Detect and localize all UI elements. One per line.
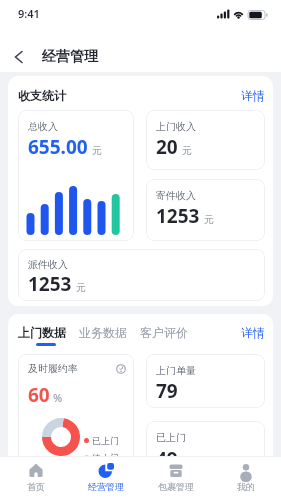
staticText: 已上门	[156, 431, 186, 444]
staticText: 9:41	[18, 6, 40, 21]
button[interactable]: 及时履约率	[18, 354, 134, 484]
staticText: 1253	[156, 203, 200, 229]
staticText: 49	[156, 446, 178, 472]
staticText: 1253	[28, 271, 72, 297]
staticText: 我的	[237, 481, 255, 492]
staticText: 元	[182, 144, 192, 157]
staticText: 上门数据	[18, 325, 66, 340]
button[interactable]	[14, 51, 24, 63]
button[interactable]: 上门数据	[18, 325, 66, 346]
staticText: 派件收入	[28, 258, 68, 271]
staticText: 及时履约率	[28, 362, 78, 375]
button[interactable]: 派件收入	[18, 249, 265, 301]
staticText: 元	[92, 144, 102, 157]
staticText: 收支统计	[18, 88, 66, 103]
staticText: 待上门	[92, 452, 119, 463]
button[interactable]: 首页	[0, 457, 71, 500]
staticText: 元	[204, 213, 214, 226]
staticText: 655.00	[28, 134, 88, 160]
button[interactable]: 包裹管理	[141, 457, 211, 500]
button[interactable]: 总收入	[18, 110, 134, 241]
staticText: 总收入	[28, 120, 58, 133]
button[interactable]: 经营管理	[71, 457, 141, 500]
button[interactable]: 详情	[241, 88, 265, 103]
staticText: 经营管理	[88, 481, 124, 492]
button[interactable]: 寄件收入	[146, 179, 265, 241]
staticText: 首页	[27, 481, 45, 492]
staticText: 上门收入	[156, 120, 196, 133]
button[interactable]: 客户评价	[140, 325, 188, 340]
staticText: 60	[28, 382, 50, 408]
button[interactable]: 上门单量	[146, 354, 265, 408]
button[interactable]: 业务数据	[79, 325, 127, 340]
staticText: 79	[156, 378, 178, 404]
staticText: 20	[156, 134, 178, 160]
staticText: %	[53, 390, 63, 405]
staticText: 包裹管理	[158, 481, 194, 492]
staticText: 上门单量	[156, 364, 196, 377]
staticText: 元	[76, 281, 86, 294]
button[interactable]: 我的	[211, 457, 281, 500]
button[interactable]: 上门收入	[146, 110, 265, 170]
staticText: 寄件收入	[156, 189, 196, 202]
staticText: 已上门	[92, 435, 119, 446]
button[interactable]: 详情	[241, 325, 265, 340]
button[interactable]: 已上门	[146, 421, 265, 496]
staticText: 经营管理	[42, 48, 98, 66]
